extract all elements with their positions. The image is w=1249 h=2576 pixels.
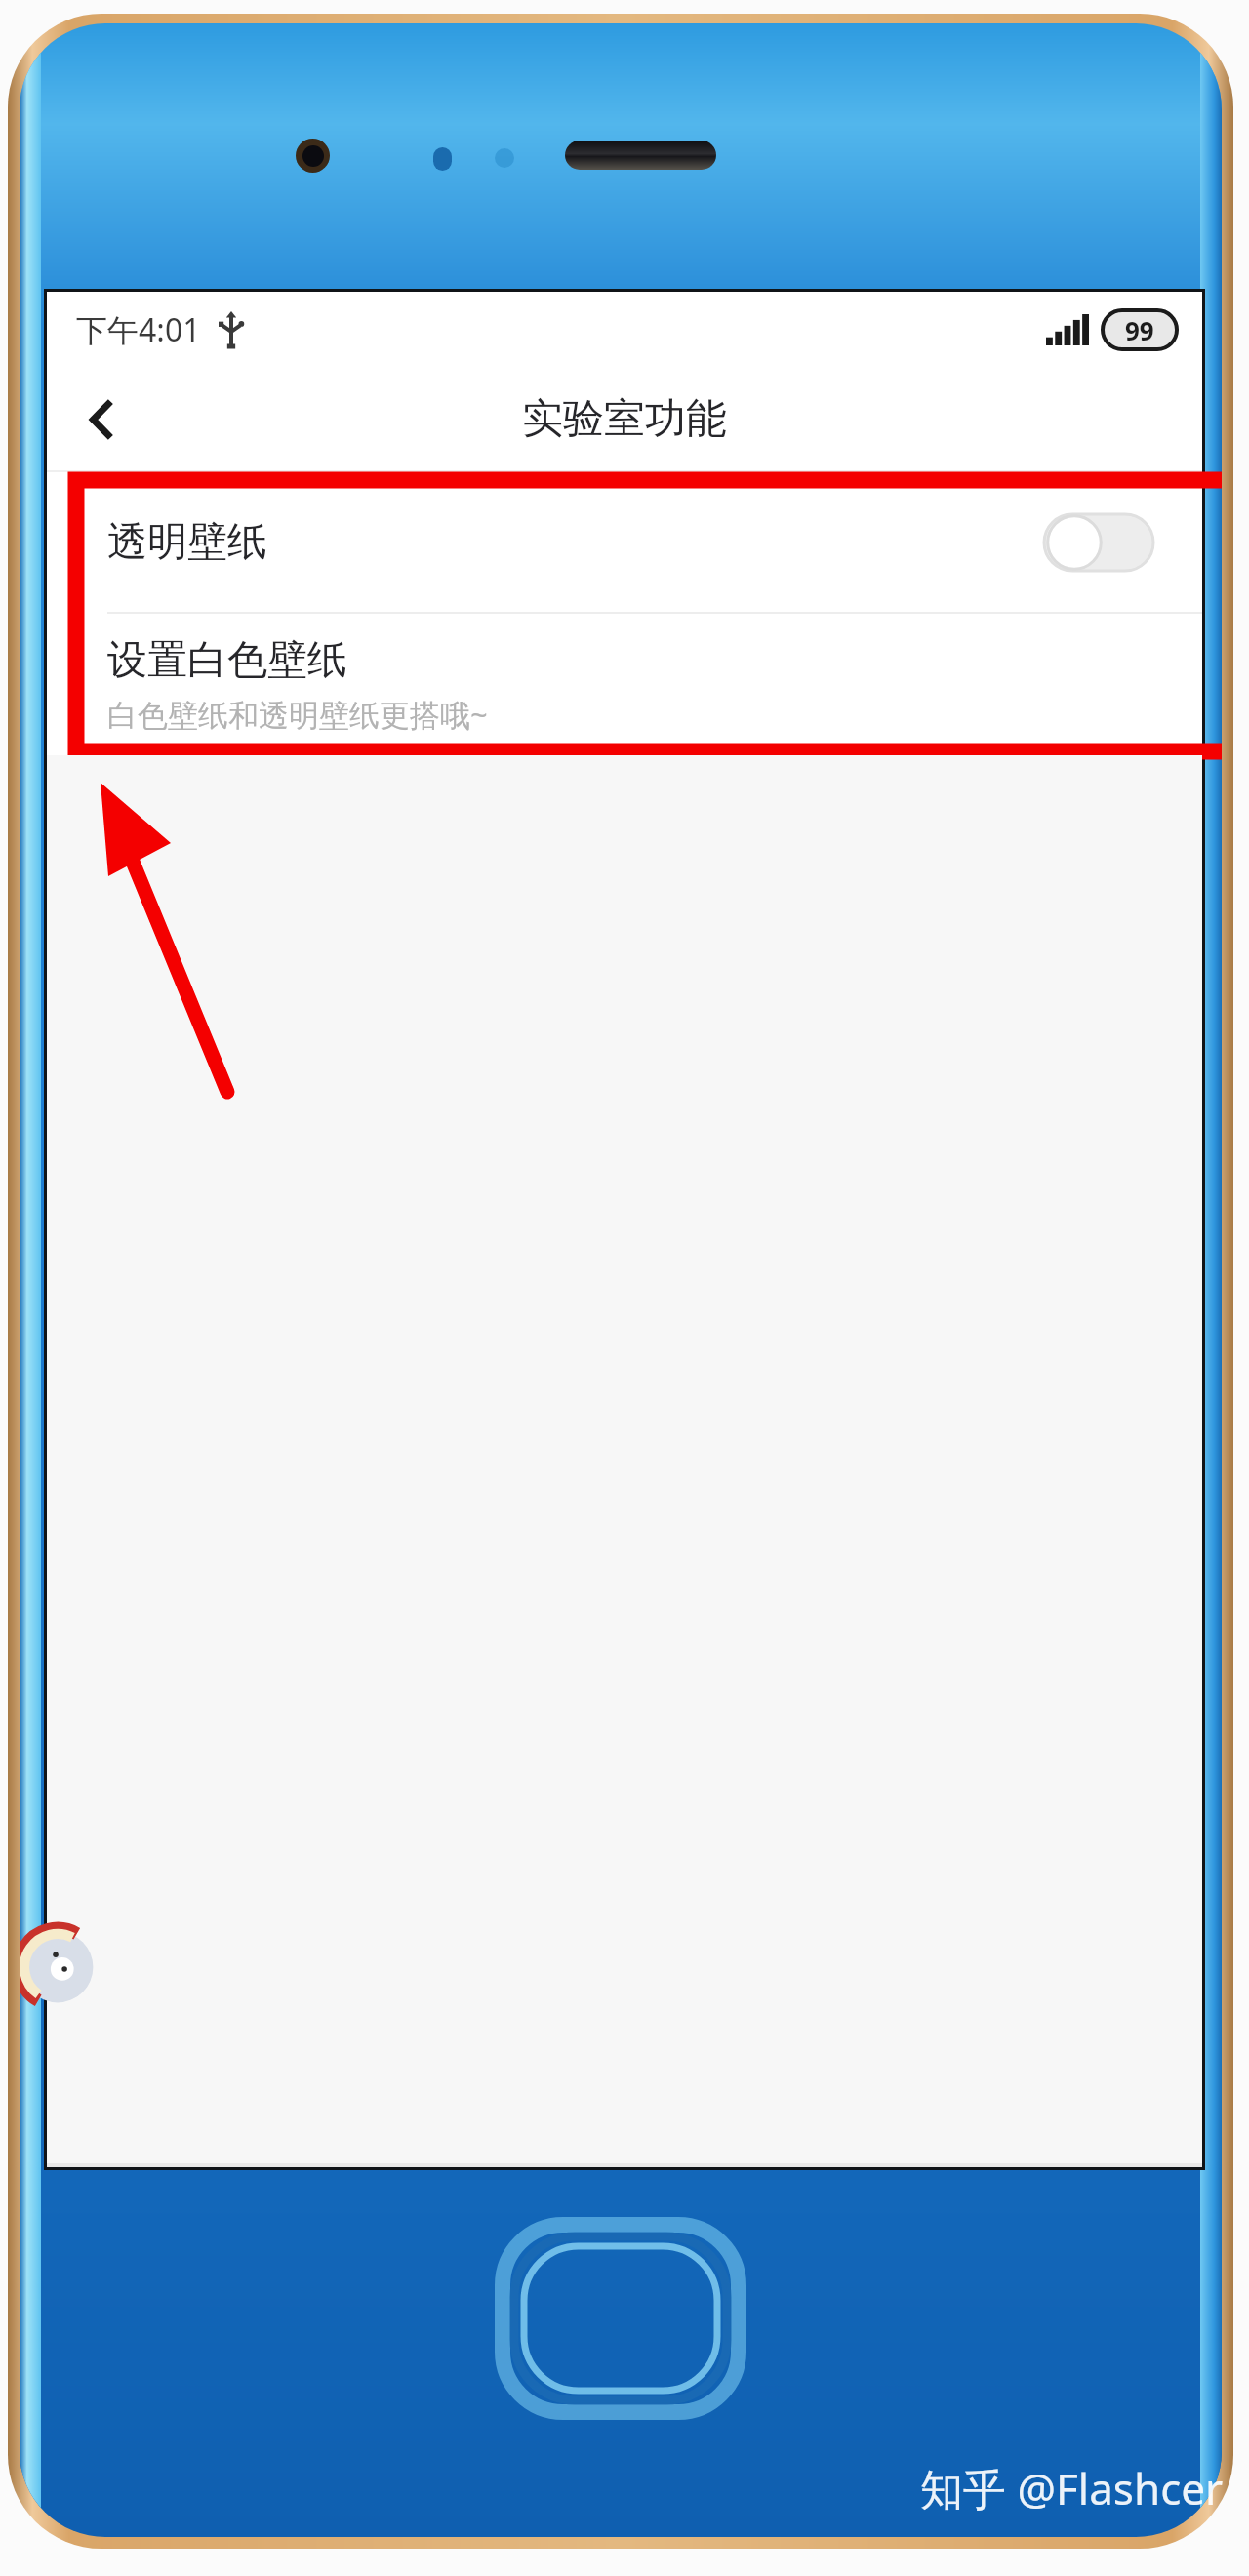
button[interactable]: 透明壁纸 toggle	[1044, 514, 1153, 571]
staticText: 透明壁纸	[107, 517, 267, 568]
staticText: 设置白色壁纸	[107, 635, 347, 686]
button[interactable]: Back	[57, 373, 150, 466]
button[interactable]: 设置白色壁纸	[47, 614, 1202, 755]
staticText: 实验室功能	[522, 393, 727, 445]
staticText: 知乎 @Flashcer	[920, 2459, 1224, 2517]
staticText: 下午4:01	[76, 308, 201, 351]
staticText: 白色壁纸和透明壁纸更搭哦~	[107, 694, 488, 735]
staticText: 99	[1125, 313, 1154, 347]
button[interactable]: 透明壁纸	[47, 472, 1202, 612]
